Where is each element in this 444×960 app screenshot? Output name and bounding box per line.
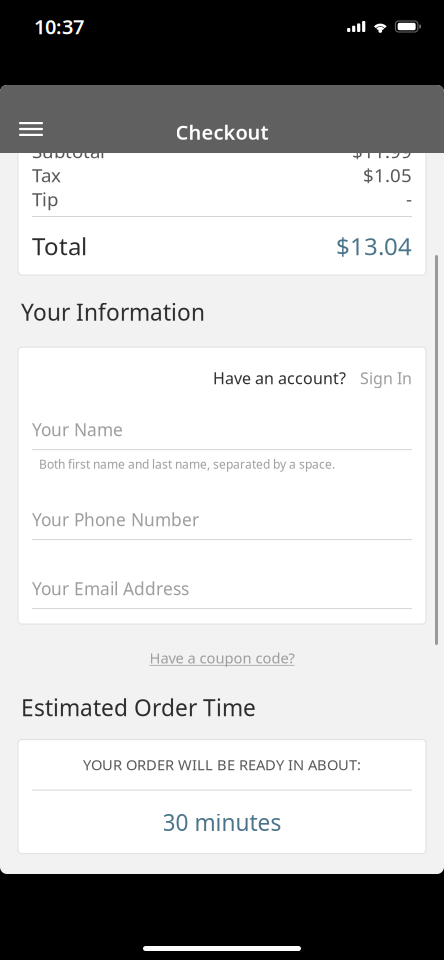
staticText: - <box>406 187 412 211</box>
staticText: Tip <box>32 187 58 211</box>
staticText: Total <box>32 230 87 262</box>
staticText: Your Email Address <box>32 577 189 600</box>
button[interactable]: Sign In <box>346 367 412 389</box>
staticText: Both first name and last name, separated… <box>39 456 335 472</box>
button[interactable]: Menu <box>0 85 61 153</box>
staticText: Tax <box>32 163 61 187</box>
staticText: YOUR ORDER WILL BE READY IN ABOUT: <box>83 755 361 774</box>
staticText: $11.99 <box>352 139 412 163</box>
staticText: Sign In <box>360 367 412 389</box>
button[interactable]: Have a coupon code? <box>0 624 444 683</box>
staticText: Your Name <box>32 418 123 441</box>
staticText: Your Phone Number <box>32 508 199 531</box>
staticText: Have an account? <box>213 367 346 389</box>
staticText: 30 minutes <box>162 807 281 837</box>
staticText: $13.04 <box>336 230 412 262</box>
staticText: Have a coupon code? <box>149 648 294 667</box>
staticText: $1.05 <box>363 163 412 187</box>
staticText: 10:37 <box>34 13 84 40</box>
staticText: Subtotal <box>32 139 105 163</box>
staticText: Estimated Order Time <box>21 692 256 723</box>
staticText: Your Information <box>21 297 205 327</box>
staticText: Checkout <box>175 119 268 145</box>
